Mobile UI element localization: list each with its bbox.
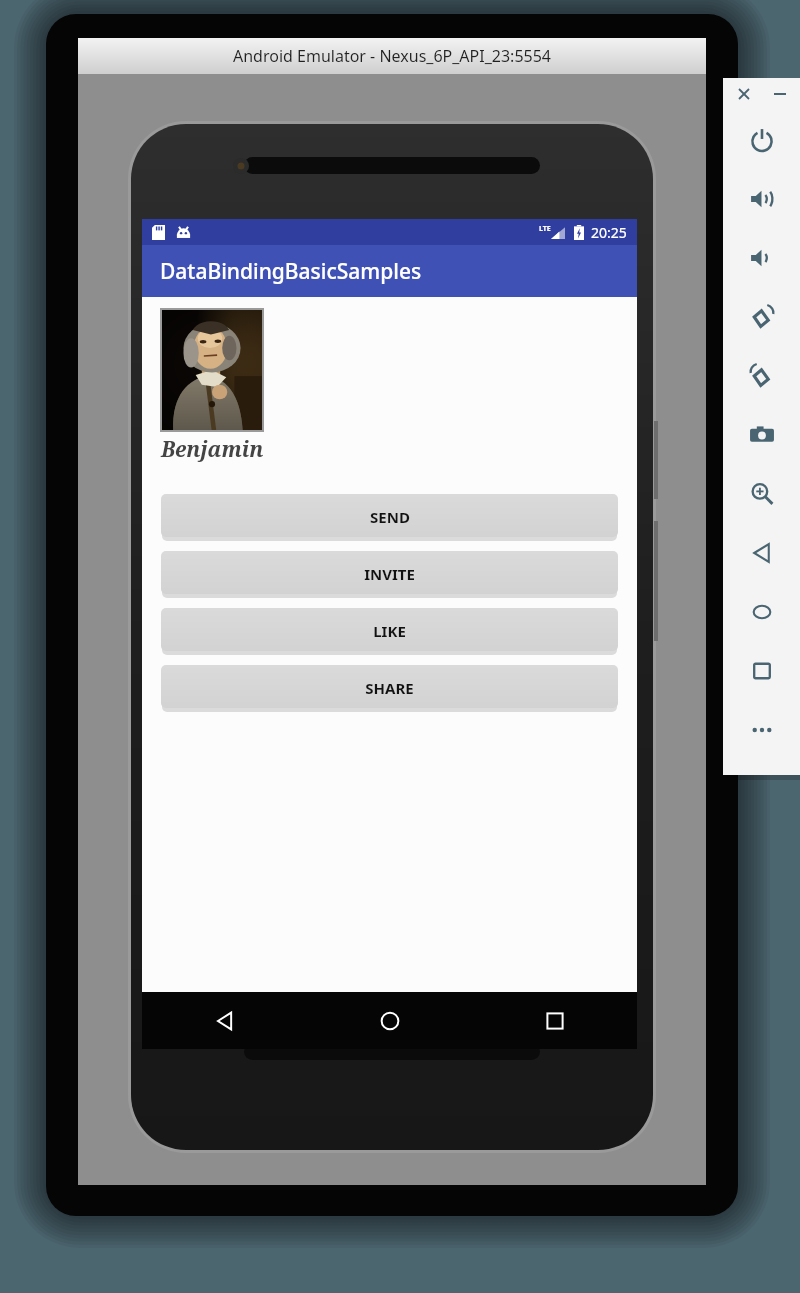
button[interactable]: Zoom — [723, 464, 800, 523]
staticText: LTE — [539, 224, 551, 234]
button[interactable]: Close — [733, 83, 755, 105]
staticText: 20:25 — [591, 223, 627, 242]
button[interactable]: LIKE — [161, 608, 618, 653]
button[interactable]: Minimize — [769, 83, 791, 105]
staticText: LIKE — [373, 621, 406, 641]
button[interactable]: More — [723, 700, 800, 759]
button[interactable]: Home — [723, 582, 800, 641]
button[interactable]: SHARE — [161, 665, 618, 710]
staticText: Benjamin — [161, 435, 264, 464]
staticText: Android Emulator - Nexus_6P_API_23:5554 — [233, 45, 551, 67]
button[interactable]: Home — [307, 992, 472, 1049]
button[interactable]: Recents — [472, 992, 637, 1049]
staticText: DataBindingBasicSamples — [160, 257, 422, 286]
button[interactable]: Power — [723, 110, 800, 169]
button[interactable]: Volume down — [723, 228, 800, 287]
button[interactable]: Rotate left — [723, 287, 800, 346]
button[interactable]: Overview — [723, 641, 800, 700]
button[interactable]: INVITE — [161, 551, 618, 596]
button[interactable]: Volume up — [723, 169, 800, 228]
button[interactable]: Rotate right — [723, 346, 800, 405]
staticText: SEND — [370, 507, 410, 527]
button[interactable]: SEND — [161, 494, 618, 539]
button[interactable]: Back — [142, 992, 307, 1049]
staticText: SHARE — [365, 678, 414, 698]
button[interactable]: Screenshot — [723, 405, 800, 464]
button[interactable]: Back — [723, 523, 800, 582]
staticText: INVITE — [364, 564, 415, 584]
